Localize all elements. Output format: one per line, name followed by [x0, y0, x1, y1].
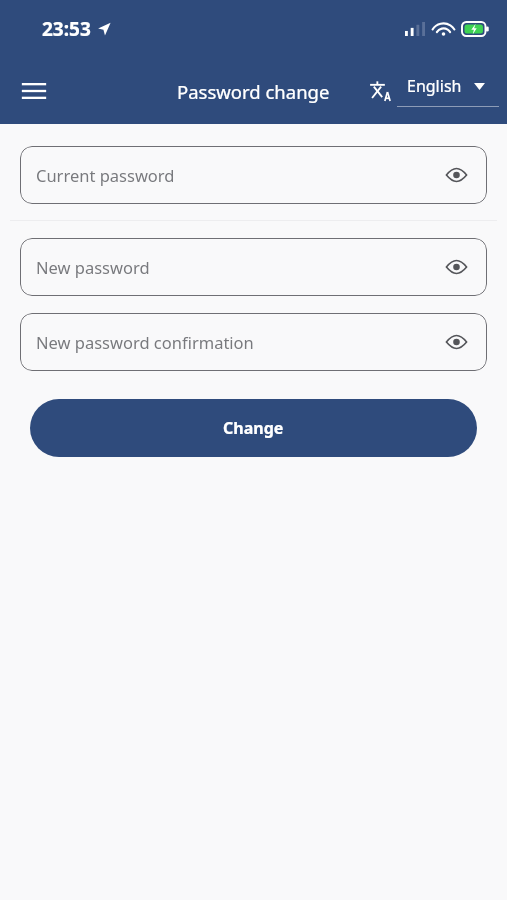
button[interactable]: Show password: [443, 254, 469, 280]
button[interactable]: Open navigation menu: [10, 67, 58, 115]
button[interactable]: Show password: [443, 329, 469, 355]
button[interactable]: English: [369, 75, 499, 107]
button[interactable]: New password: [20, 238, 487, 296]
staticText: English: [407, 75, 462, 97]
staticText: Current password: [36, 164, 443, 186]
staticText: Password change: [177, 79, 330, 104]
staticText: 23:53: [42, 16, 91, 42]
staticText: Change: [223, 417, 284, 439]
staticText: New password confirmation: [36, 331, 443, 353]
button[interactable]: Change: [30, 399, 477, 457]
button[interactable]: Current password: [20, 146, 487, 204]
button[interactable]: New password confirmation: [20, 313, 487, 371]
button[interactable]: Show password: [443, 162, 469, 188]
staticText: New password: [36, 256, 443, 278]
